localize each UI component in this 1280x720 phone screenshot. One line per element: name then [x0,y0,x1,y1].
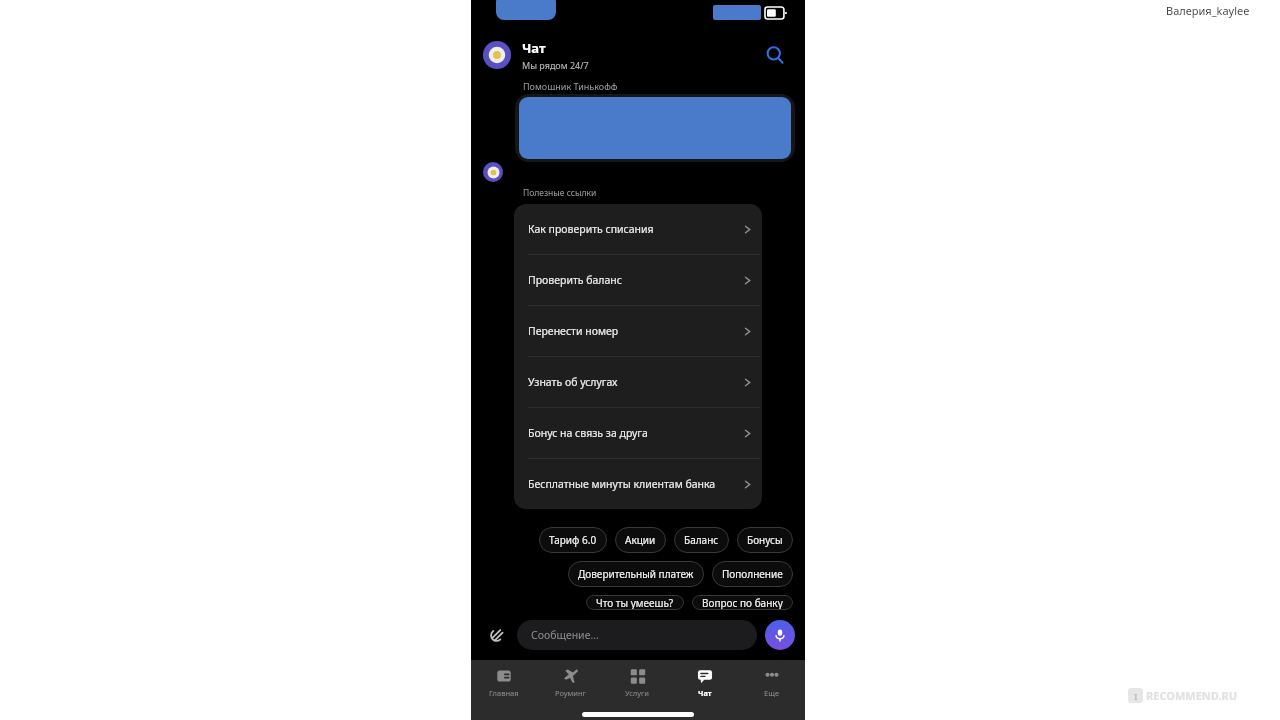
button[interactable]: Роуминг [537,668,604,698]
staticText: RECOMMEND.RU [1146,688,1238,703]
staticText: Бонус на связь за друга [528,426,739,440]
staticText: Помощник Тинькофф [523,80,618,90]
staticText: I [1134,690,1138,702]
staticText: Бонусы [747,533,783,547]
staticText: Доверительный платеж [578,567,694,581]
staticText: Валерия_kaylee [1166,3,1250,18]
button[interactable]: Как проверить списания [514,204,762,254]
staticText: Как проверить списания [528,222,739,236]
button[interactable]: Тариф 6.0 [539,527,607,553]
staticText: Мы рядом 24/7 [522,59,589,71]
button[interactable]: Доверительный платеж [568,561,704,587]
button[interactable]: Сообщение... [517,620,757,650]
staticText: Чат [522,39,546,57]
staticText: Роуминг [555,688,586,698]
button[interactable]: Бонусы [737,527,793,553]
button[interactable]: Voice message [765,620,795,650]
button[interactable]: Чат [671,668,738,698]
staticText: Баланс [684,533,719,547]
staticText: Акции [625,533,656,547]
button[interactable]: Узнать об услугах [514,357,762,407]
button[interactable]: Attach file [481,620,511,650]
staticText: Вопрос по банку [702,596,783,610]
button[interactable]: Search [757,37,793,73]
button[interactable]: Бонус на связь за друга [514,408,762,458]
staticText: Полезные ссылки [523,187,597,199]
staticText: Что ты умеешь? [596,596,674,610]
staticText: Еще [764,688,780,698]
button[interactable]: Пополнение [712,561,793,587]
staticText: Главная [489,688,519,698]
staticText: Тариф 6.0 [549,533,597,547]
button[interactable]: Акции [615,527,666,553]
staticText: Перенести номер [528,324,739,338]
button[interactable]: Перенести номер [514,306,762,356]
button[interactable]: Что ты умеешь? [586,595,684,610]
button[interactable] [515,94,795,162]
button[interactable]: Вопрос по банку [692,595,793,610]
staticText: Чат [698,688,712,698]
button[interactable]: Еще [738,668,805,698]
button[interactable]: Услуги [604,668,671,698]
staticText: Сообщение... [531,628,599,642]
button[interactable]: Главная [471,668,537,698]
staticText: Услуги [625,688,650,698]
staticText: Бесплатные минуты клиентам банка [528,477,739,491]
staticText: Пополнение [722,567,783,581]
button[interactable]: Баланс [674,527,729,553]
button[interactable]: Бесплатные минуты клиентам банка [514,459,762,509]
staticText: Узнать об услугах [528,375,739,389]
button[interactable]: Проверить баланс [514,255,762,305]
staticText: Проверить баланс [528,273,739,287]
